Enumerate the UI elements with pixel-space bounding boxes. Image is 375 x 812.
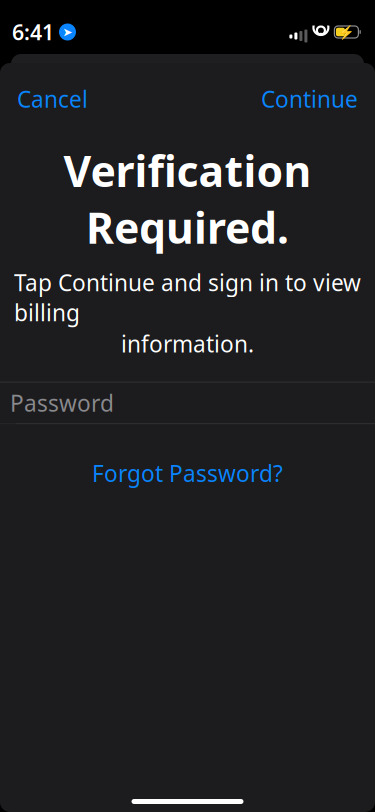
staticText: Forgot Password? — [92, 458, 283, 488]
staticText: Verification — [63, 142, 311, 199]
staticText: Password — [10, 388, 114, 418]
staticText: 6:41 — [12, 18, 54, 46]
staticText: Cancel — [17, 84, 88, 114]
button[interactable]: Cancel — [0, 73, 105, 125]
staticText: information. — [121, 329, 254, 359]
button[interactable]: Continue — [244, 73, 375, 125]
button[interactable]: Forgot Password? — [0, 448, 375, 498]
staticText: Tap Continue and sign in to view billing — [14, 267, 361, 328]
button[interactable]: Password — [0, 382, 375, 423]
staticText: ➤ — [62, 25, 72, 39]
staticText: Continue — [261, 84, 358, 114]
staticText: Required. — [86, 199, 289, 255]
staticText: ⚡ — [338, 24, 355, 40]
